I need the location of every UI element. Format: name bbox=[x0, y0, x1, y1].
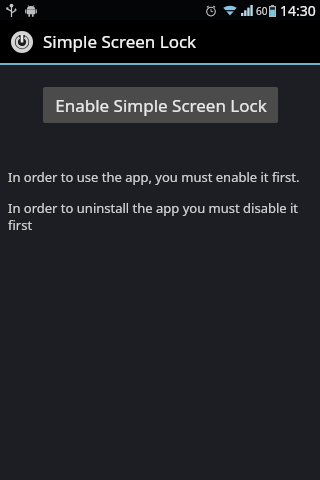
button[interactable]: Enable Simple Screen Lock bbox=[43, 87, 278, 123]
staticText: In order to use the app, you must enable… bbox=[8, 168, 300, 186]
staticText: 14:30 bbox=[280, 1, 316, 20]
staticText: 60 bbox=[256, 4, 268, 18]
staticText: Simple Screen Lock bbox=[43, 30, 197, 53]
staticText: In order to uninstall the app you must d… bbox=[8, 199, 314, 234]
staticText: Enable Simple Screen Lock bbox=[55, 94, 267, 117]
